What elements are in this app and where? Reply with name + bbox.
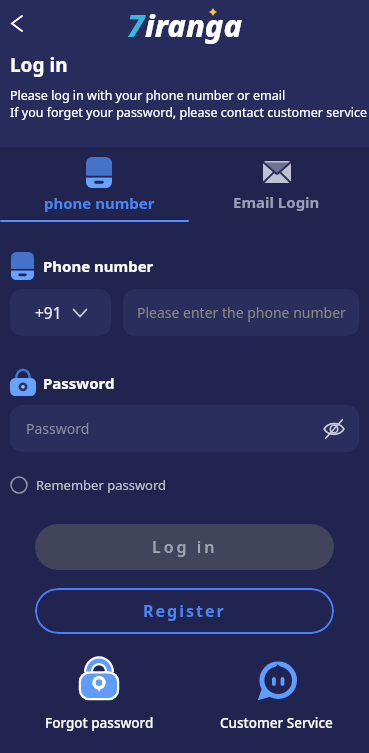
staticText: Please enter the phone number xyxy=(137,303,346,322)
button[interactable]: Remember password xyxy=(10,476,167,494)
button[interactable]: Log in xyxy=(35,524,334,570)
staticText: phone number xyxy=(44,193,155,213)
staticText: 7 xyxy=(127,4,145,46)
staticText: Email Login xyxy=(233,192,320,212)
button[interactable]: phone number xyxy=(7,147,191,220)
staticText: Password xyxy=(26,419,90,438)
button[interactable]: Please enter the phone number xyxy=(123,289,359,336)
staticText: If you forget your password, please cont… xyxy=(10,104,368,121)
button[interactable]: +91 xyxy=(10,289,111,336)
staticText: iranga xyxy=(145,4,243,46)
staticText: Register xyxy=(143,600,226,622)
staticText: Forgot password xyxy=(45,714,154,732)
button[interactable] xyxy=(2,8,32,38)
staticText: Customer Service xyxy=(220,714,333,732)
button[interactable]: Forgot password xyxy=(7,658,191,732)
staticText: +91 xyxy=(35,302,62,323)
button[interactable]: Email Login xyxy=(184,147,369,220)
staticText: Remember password xyxy=(36,476,167,494)
button[interactable]: Password xyxy=(10,405,359,452)
staticText: Password xyxy=(43,373,115,393)
button[interactable]: Register xyxy=(35,588,334,634)
staticText: Phone number xyxy=(43,256,154,276)
staticText: Please log in with your phone number or … xyxy=(10,87,286,104)
staticText: Log in xyxy=(152,536,218,558)
button[interactable]: Customer Service xyxy=(184,658,369,732)
staticText: Log in xyxy=(10,52,68,78)
